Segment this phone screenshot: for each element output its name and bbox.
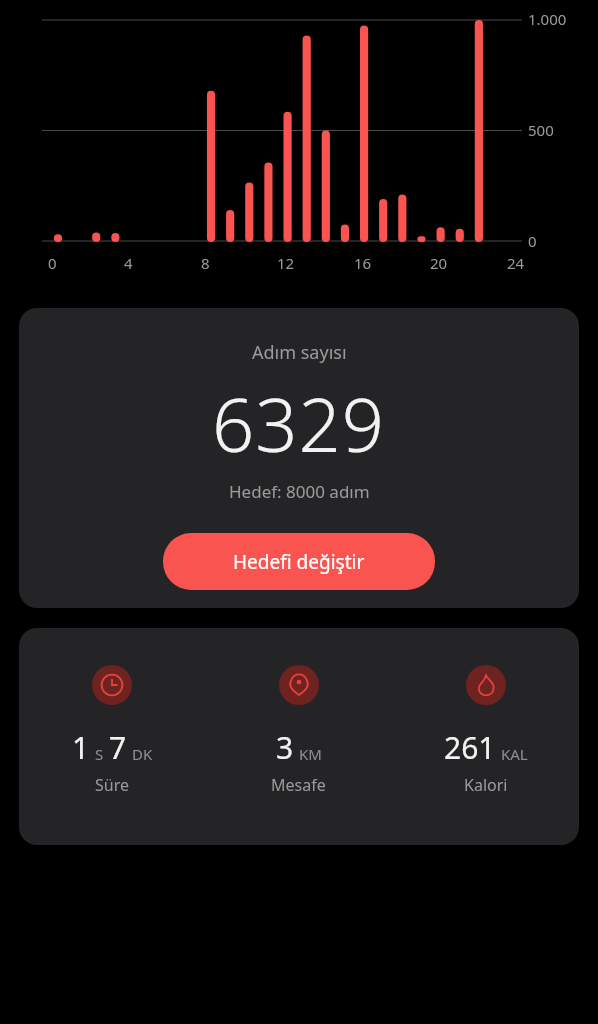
other: Distance [279,665,319,705]
staticText: Hedef: 8000 adım [229,480,370,503]
button[interactable]: Adım sayısı [19,308,579,608]
button[interactable]: Duration [19,628,205,845]
button[interactable]: Distance [205,628,392,845]
staticText: S [95,744,104,764]
staticText: 7 [109,727,127,768]
other: Duration [92,665,132,705]
staticText: 8 [201,253,210,273]
staticText: 0 [48,253,57,273]
staticText: Süre [95,774,129,796]
staticText: 0 [528,231,537,251]
staticText: Kalori [464,774,508,796]
button[interactable]: Calories [392,628,579,845]
staticText: 6329 [212,373,386,474]
staticText: 24 [507,253,525,273]
staticText: 500 [528,120,554,140]
staticText: Adım sayısı [252,340,347,365]
staticText: 3 [276,727,294,768]
staticText: 4 [124,253,133,273]
staticText: Hedefi değiştir [233,549,365,575]
other: Calories [466,665,506,705]
staticText: 16 [354,253,372,273]
staticText: DK [132,744,153,764]
staticText: 1 [72,727,90,768]
staticText: 261 [444,727,496,768]
staticText: 1.000 [528,9,567,29]
staticText: 20 [430,253,448,273]
staticText: KAL [501,744,528,764]
staticText: 12 [277,253,295,273]
staticText: Mesafe [271,774,326,796]
button[interactable]: Hedefi değiştir [163,533,435,590]
staticText: KM [299,744,322,764]
